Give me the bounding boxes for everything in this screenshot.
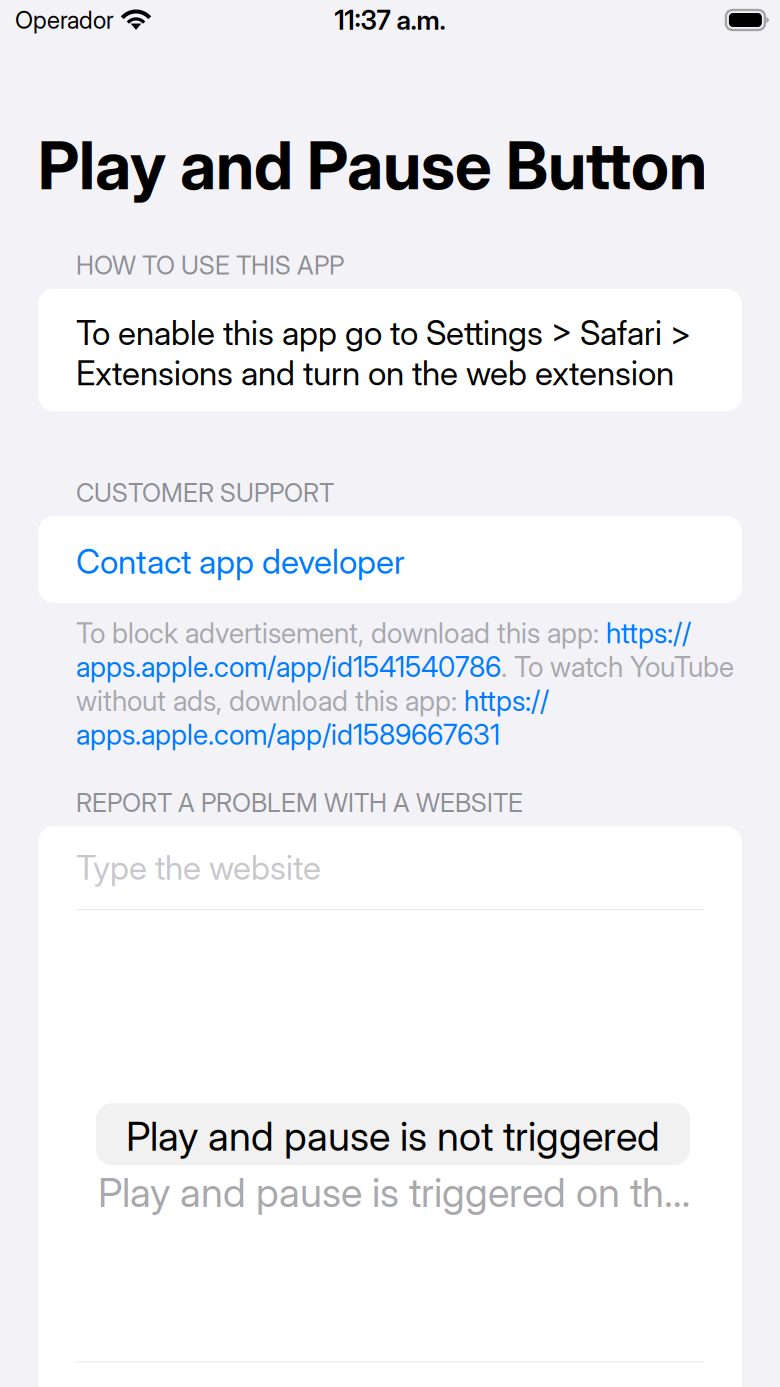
staticText: Contact app developer <box>76 541 405 582</box>
staticText: HOW TO USE THIS APP <box>76 250 344 281</box>
staticText: CUSTOMER SUPPORT <box>76 477 334 508</box>
staticText: Play and pause is not triggered <box>126 1112 660 1160</box>
staticText: Play and Pause Button <box>38 126 707 205</box>
staticText: Type the website <box>76 847 321 888</box>
staticText: Play and pause is triggered on th… <box>98 1168 690 1217</box>
staticText: To enable this app go to Settings > Safa… <box>76 313 691 393</box>
staticText: Operador <box>15 5 114 34</box>
button[interactable]: Contact app developer <box>38 516 742 603</box>
staticText: 11:37 a.m. <box>334 4 445 36</box>
staticText: To block advertisement, download this ap… <box>76 616 734 751</box>
staticText: REPORT A PROBLEM WITH A WEBSITE <box>76 787 523 818</box>
